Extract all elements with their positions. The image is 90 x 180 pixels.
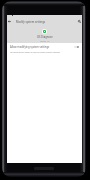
button[interactable]: Allow modifying system settings: [7, 43, 82, 55]
staticText: Modify system settings: [16, 20, 46, 24]
button[interactable]: Navigate up: [7, 19, 12, 24]
staticText: OS Diagnose: [37, 35, 53, 39]
staticText: version 1.0: [40, 40, 50, 42]
button[interactable]: Search: [77, 19, 82, 24]
staticText: Allow modifying system settings: [10, 45, 50, 49]
staticText: This permission allows an app to modify …: [10, 51, 60, 54]
